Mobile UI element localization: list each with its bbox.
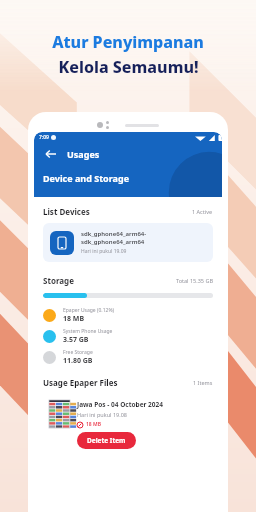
staticText: Storage (43, 275, 74, 286)
staticText: 1 Items (193, 379, 213, 386)
button[interactable]: sdk_gphone64_arm64-sdk_gphone64_arm64 (43, 223, 213, 262)
button[interactable]: Delete Item (77, 432, 136, 449)
staticText: Hari ini pukul 19.08 (77, 411, 127, 418)
staticText: Kelola Semaumu! (58, 56, 199, 78)
staticText: Delete Item (87, 436, 126, 445)
staticText: 11.80 GB (63, 356, 93, 366)
staticText: Device and Storage (43, 172, 130, 184)
staticText: Epaper Usage (0.12%) (63, 307, 115, 314)
staticText: sdk_gphone64_arm64-sdk_gphone64_arm64 (81, 230, 206, 246)
staticText: 1 Active (192, 208, 213, 215)
staticText: Usage Epaper Files (43, 377, 118, 388)
staticText: Total 15.35 GB (176, 277, 213, 284)
staticText: Usages (67, 148, 100, 160)
staticText: Hari ini pukul 19.09 (81, 248, 127, 255)
staticText: 18 MB (63, 314, 85, 324)
staticText: List Devices (43, 206, 90, 217)
staticText: Atur Penyimpanan (52, 31, 204, 53)
staticText: Free Storage (63, 349, 93, 356)
button[interactable]: Jawa Pos - 04 October 2024 (43, 394, 213, 455)
button[interactable]: Back (42, 145, 60, 163)
staticText: 3.57 GB (63, 335, 89, 345)
staticText: Jawa Pos - 04 October 2024 (77, 400, 163, 409)
staticText: 18 MB (86, 421, 101, 428)
staticText: System Phone Usage (63, 328, 113, 335)
staticText: 7:09 (39, 134, 49, 141)
